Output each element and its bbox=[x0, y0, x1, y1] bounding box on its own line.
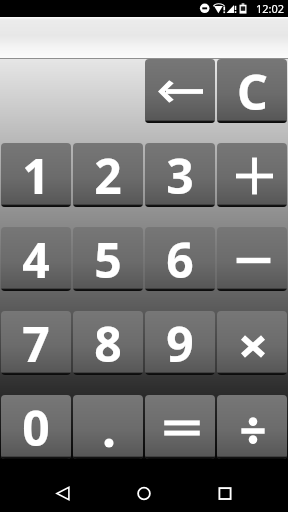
button[interactable]: Decimal point bbox=[73, 395, 143, 459]
button[interactable]: Equals bbox=[145, 395, 215, 459]
staticText: 1 bbox=[22, 143, 50, 207]
button[interactable]: Plus bbox=[217, 143, 287, 207]
staticText: 9 bbox=[166, 311, 194, 375]
staticText: 6 bbox=[166, 227, 194, 291]
staticText: 3 bbox=[166, 143, 194, 207]
button[interactable]: 7 bbox=[1, 311, 71, 375]
button[interactable]: 2 bbox=[73, 143, 143, 207]
staticText: 2 bbox=[94, 143, 122, 207]
button[interactable]: Divide bbox=[217, 395, 287, 459]
button[interactable]: C bbox=[217, 59, 287, 123]
button[interactable]: Minus bbox=[217, 227, 287, 291]
staticText: 5 bbox=[94, 227, 122, 291]
button[interactable]: Home bbox=[120, 475, 168, 512]
staticText: 12:02 bbox=[256, 1, 285, 16]
button[interactable]: 1 bbox=[1, 143, 71, 207]
button[interactable]: 0 bbox=[1, 395, 71, 459]
button[interactable]: 4 bbox=[1, 227, 71, 291]
button[interactable]: Backspace bbox=[145, 59, 215, 123]
button[interactable]: 3 bbox=[145, 143, 215, 207]
staticText: 8 bbox=[94, 311, 122, 375]
button[interactable]: 5 bbox=[73, 227, 143, 291]
button[interactable]: 9 bbox=[145, 311, 215, 375]
button[interactable]: Recent apps bbox=[201, 475, 249, 512]
staticText: 0 bbox=[22, 395, 50, 459]
staticText: C bbox=[237, 59, 268, 123]
staticText: 4 bbox=[22, 227, 50, 291]
staticText: 7 bbox=[22, 311, 50, 375]
button[interactable]: 8 bbox=[73, 311, 143, 375]
button[interactable]: Multiply bbox=[217, 311, 287, 375]
button[interactable]: 6 bbox=[145, 227, 215, 291]
button[interactable]: Back bbox=[39, 475, 87, 512]
